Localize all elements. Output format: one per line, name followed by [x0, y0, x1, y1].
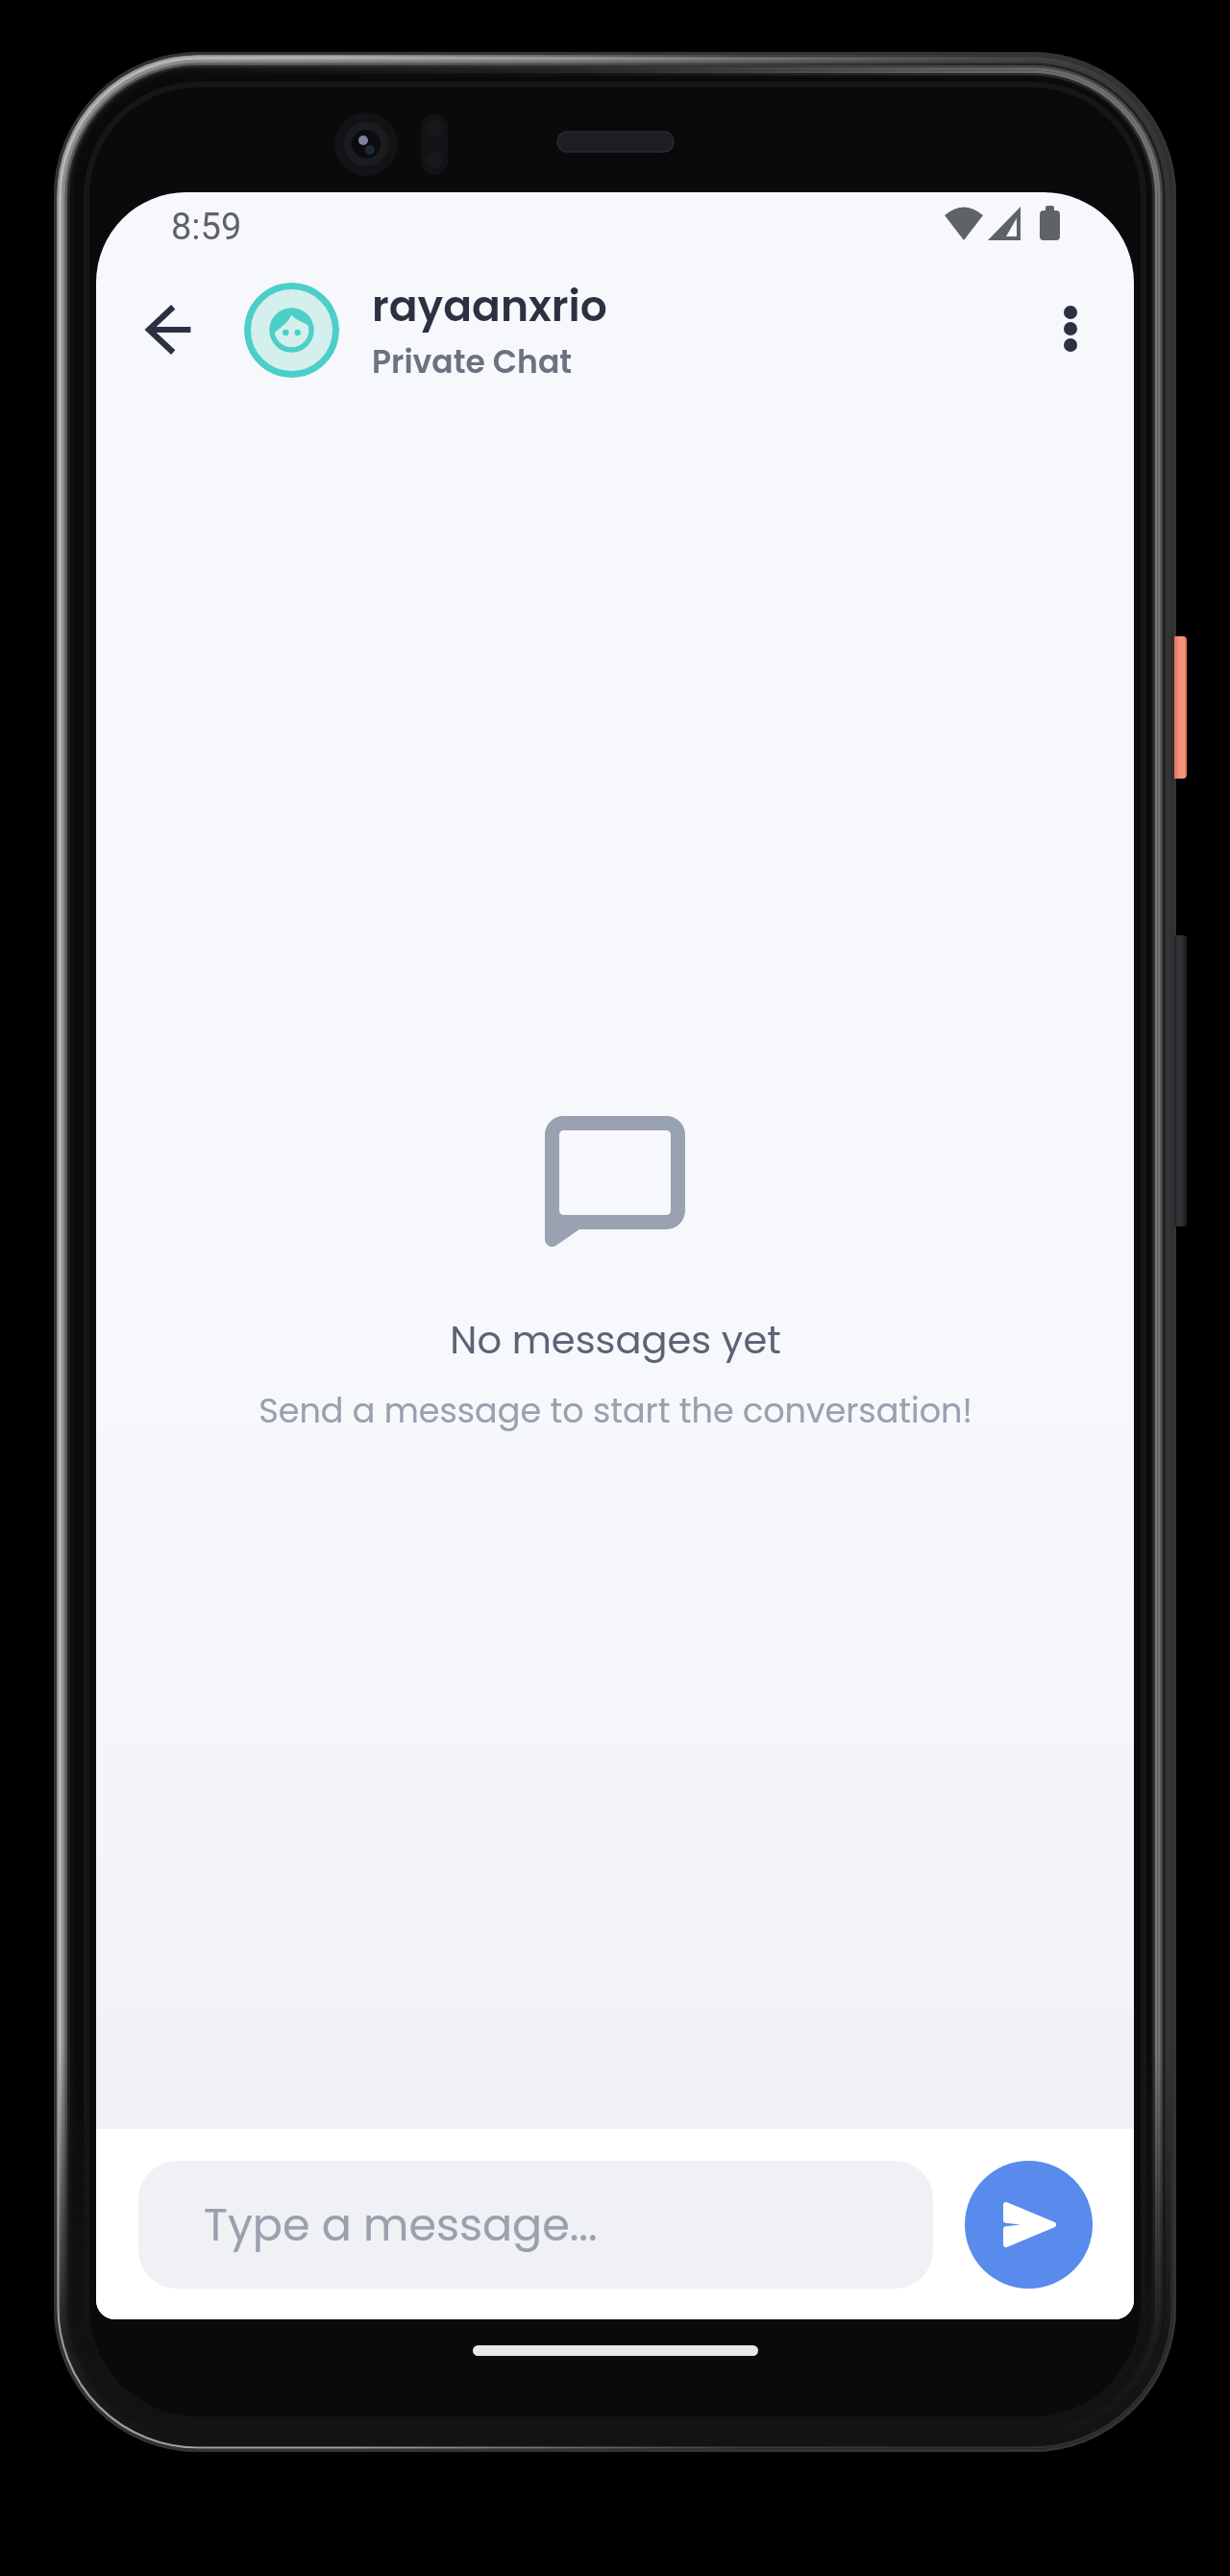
- button[interactable]: Profile picture: [244, 283, 339, 378]
- button[interactable]: More options: [1028, 286, 1113, 371]
- staticText: rayaanxrio: [372, 277, 607, 336]
- button[interactable]: Send: [965, 2161, 1093, 2289]
- staticText: Send a message to start the conversation…: [258, 1387, 972, 1434]
- staticText: No messages yet: [450, 1313, 781, 1367]
- staticText: 8:59: [171, 206, 242, 249]
- staticText: Private Chat: [372, 339, 573, 384]
- staticText: Type a message...: [204, 2194, 598, 2256]
- button[interactable]: Type a message...: [138, 2161, 933, 2289]
- button[interactable]: Back: [128, 287, 212, 372]
